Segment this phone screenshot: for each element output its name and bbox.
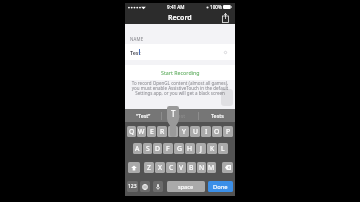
button[interactable]: Q [127, 126, 136, 137]
button[interactable]: “Test” [125, 109, 161, 122]
staticText: Test [130, 49, 141, 56]
staticText: S [146, 144, 150, 153]
button[interactable]: Shift [128, 162, 140, 173]
button[interactable]: L [218, 143, 228, 154]
staticText: N [199, 163, 205, 172]
staticText: To record OpenGL content (almost all gam… [129, 80, 231, 96]
staticText: Q [129, 127, 135, 136]
staticText: B [189, 163, 194, 172]
button[interactable]: D [153, 143, 162, 154]
staticText: X [158, 163, 162, 172]
staticText: “Test” [136, 112, 151, 119]
staticText: Z [147, 163, 151, 172]
staticText: L [221, 144, 225, 153]
staticText: E [150, 127, 154, 136]
staticText: H [187, 144, 193, 153]
button[interactable]: Test [162, 109, 198, 122]
button[interactable]: Y [179, 126, 189, 137]
staticText: Test [175, 112, 186, 119]
staticText: 123 [128, 183, 137, 190]
button[interactable]: space [167, 181, 205, 192]
button[interactable]: F [163, 143, 173, 154]
staticText: I [205, 127, 208, 136]
button[interactable]: J [196, 143, 206, 154]
button[interactable]: Done [208, 181, 233, 192]
button[interactable]: Z [144, 162, 154, 173]
staticText: K [210, 144, 215, 153]
button[interactable]: C [166, 162, 176, 173]
button[interactable]: U [190, 126, 200, 137]
button[interactable]: B [187, 162, 196, 173]
staticText: Done [213, 183, 228, 191]
button[interactable]: R [157, 126, 167, 137]
button[interactable]: H [185, 143, 195, 154]
button[interactable]: A [133, 143, 142, 154]
button[interactable]: Share [221, 13, 230, 23]
button[interactable]: V [177, 162, 186, 173]
staticText: J [200, 144, 202, 153]
button[interactable]: Switch keyboard [140, 181, 150, 192]
button[interactable]: P [223, 126, 233, 137]
staticText: Start Recording [161, 69, 200, 76]
button[interactable]: Test [125, 44, 235, 60]
staticText: R [160, 127, 165, 136]
staticText: NAME [130, 36, 144, 42]
staticText: O [214, 127, 220, 136]
button[interactable]: M [207, 162, 216, 173]
staticText: C [169, 163, 174, 172]
button[interactable]: X [155, 162, 165, 173]
button[interactable]: E [147, 126, 156, 137]
staticText: Record [168, 13, 192, 23]
staticText: Y [182, 127, 186, 136]
button[interactable]: 123 [127, 181, 138, 192]
staticText: V [179, 163, 184, 172]
button[interactable]: T [168, 126, 178, 137]
button[interactable]: Dictate [153, 181, 163, 192]
staticText: U [193, 127, 198, 136]
staticText: M [208, 163, 215, 172]
staticText: Tests [211, 112, 224, 119]
staticText: 100% [210, 4, 222, 10]
button[interactable]: Tests [199, 109, 235, 122]
staticText: W [138, 127, 145, 136]
button[interactable]: O [212, 126, 222, 137]
staticText: 9:41 AM [167, 4, 185, 10]
button[interactable]: G [174, 143, 184, 154]
button[interactable]: S [143, 143, 152, 154]
staticText: G [177, 144, 182, 153]
button[interactable]: Backspace [222, 162, 233, 173]
staticText: D [155, 144, 160, 153]
staticText: P [226, 127, 231, 136]
button[interactable]: K [207, 143, 217, 154]
button[interactable]: W [137, 126, 146, 137]
button[interactable]: Start Recording [125, 65, 235, 80]
button[interactable]: N [197, 162, 206, 173]
button[interactable]: I [201, 126, 211, 137]
staticText: A [135, 144, 140, 153]
staticText: space [178, 183, 194, 191]
staticText: F [166, 144, 170, 153]
staticText: T [171, 108, 176, 119]
